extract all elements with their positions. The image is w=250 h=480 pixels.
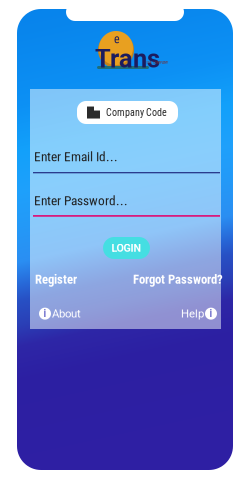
staticText: LOGIN [111,242,141,254]
staticText: Company Code [106,107,167,118]
button[interactable]: Company Code [77,101,178,124]
button[interactable]: i [39,307,81,320]
staticText: Enter Password... [34,193,128,209]
button[interactable]: LOGIN [103,237,150,259]
staticText: Trans [95,44,160,74]
button[interactable]: Forgot Password? [133,272,223,287]
staticText: i [43,308,46,319]
staticText: Register [35,272,77,287]
staticText: e [114,32,120,46]
staticText: Forgot Password? [133,272,223,287]
staticText: About [52,307,81,320]
staticText: THE COMPANY [146,60,168,65]
staticText: Enter Email Id... [34,149,118,165]
button[interactable]: Register [35,272,77,287]
staticText: i [209,308,212,319]
staticText: Help [181,307,204,320]
button[interactable]: Help [181,307,217,320]
